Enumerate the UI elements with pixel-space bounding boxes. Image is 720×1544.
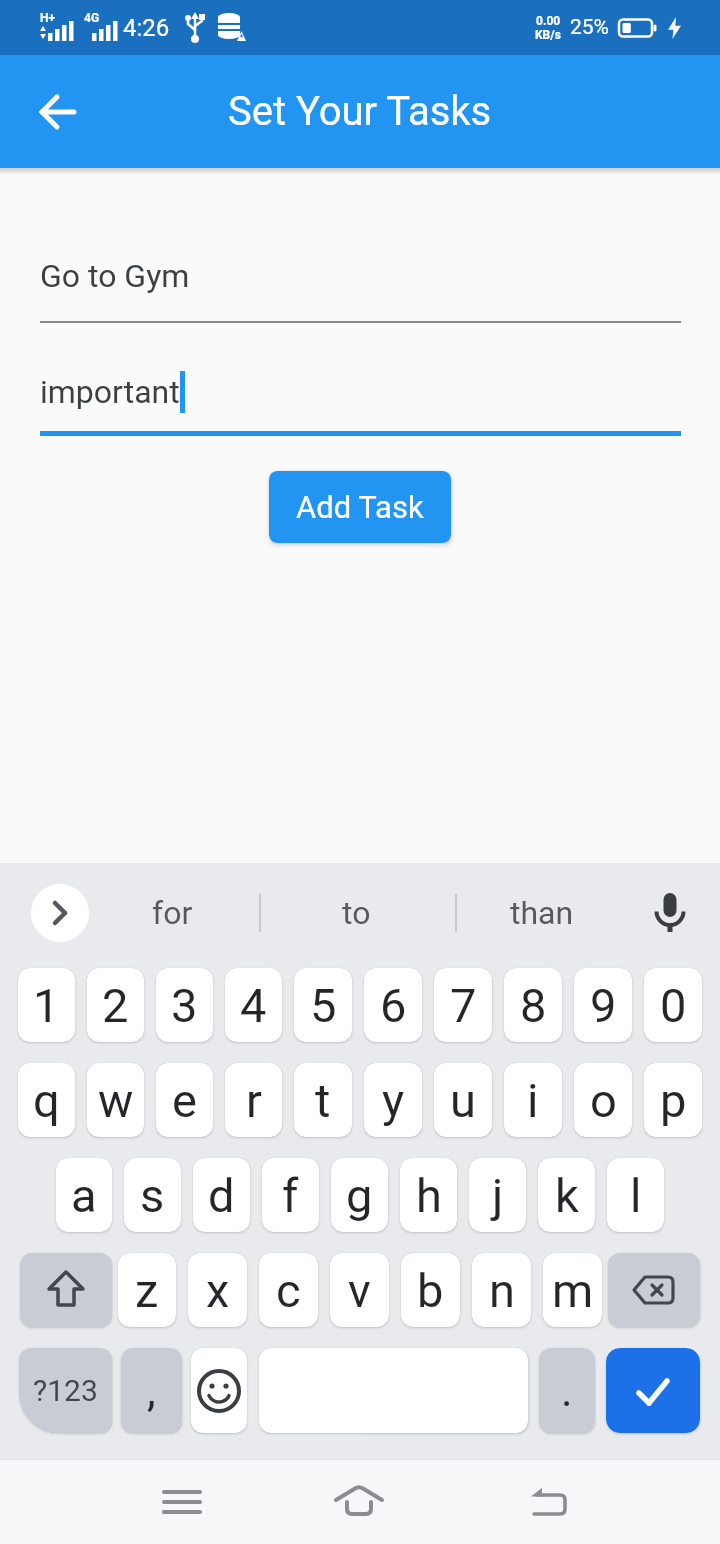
staticText: l (630, 1168, 642, 1223)
staticText: 25% (570, 15, 609, 40)
staticText: Go to Gym (40, 257, 190, 295)
button[interactable] (606, 1348, 700, 1433)
staticText: p (660, 1073, 687, 1128)
staticText: m (552, 1263, 594, 1318)
button[interactable]: q (18, 1063, 75, 1137)
button[interactable]: t (294, 1063, 352, 1137)
staticText: . (561, 1365, 573, 1417)
staticText: 3 (171, 978, 198, 1033)
button[interactable]: 7 (434, 968, 492, 1042)
button[interactable] (20, 1253, 112, 1327)
staticText: g (346, 1168, 373, 1223)
button[interactable]: h (400, 1158, 457, 1232)
staticText: c (276, 1263, 301, 1318)
button[interactable]: 6 (364, 968, 422, 1042)
staticText: 9 (590, 978, 617, 1033)
button[interactable]: i (504, 1063, 562, 1137)
button[interactable]: to (276, 863, 436, 963)
button[interactable]: l (607, 1158, 664, 1232)
button[interactable]: n (472, 1253, 531, 1327)
staticText: H+ (40, 11, 56, 25)
staticText: , (147, 1365, 156, 1417)
button[interactable] (309, 1459, 409, 1544)
button[interactable]: m (543, 1253, 602, 1327)
button[interactable]: b (401, 1253, 460, 1327)
button[interactable]: 8 (504, 968, 562, 1042)
button[interactable]: k (538, 1158, 595, 1232)
staticText: 0.00 (536, 14, 561, 28)
button[interactable]: 5 (294, 968, 352, 1042)
button[interactable]: 3 (156, 968, 213, 1042)
staticText: x (206, 1263, 230, 1318)
button[interactable]: 0 (644, 968, 702, 1042)
button[interactable] (132, 1459, 232, 1544)
staticText: for (152, 894, 193, 932)
staticText: 0 (660, 978, 687, 1033)
button[interactable]: . (539, 1348, 595, 1433)
button[interactable]: a (56, 1158, 112, 1232)
button[interactable]: Add Task (269, 471, 451, 543)
button[interactable]: z (118, 1253, 176, 1327)
staticText: Add Task (296, 489, 424, 525)
button[interactable] (31, 884, 89, 942)
staticText: h (416, 1168, 442, 1223)
staticText: z (135, 1263, 159, 1318)
staticText: a (71, 1168, 97, 1223)
staticText: 7 (450, 978, 477, 1033)
staticText: 8 (520, 978, 547, 1033)
staticText: 4:26 (123, 14, 170, 42)
button[interactable]: r (225, 1063, 282, 1137)
button[interactable]: d (193, 1158, 250, 1232)
button[interactable]: v (330, 1253, 389, 1327)
staticText: y (382, 1073, 405, 1128)
button[interactable]: , (121, 1348, 182, 1433)
button[interactable]: o (574, 1063, 632, 1137)
staticText: o (590, 1073, 617, 1128)
staticText: 4 (240, 978, 267, 1033)
button[interactable]: than (462, 863, 622, 963)
button[interactable]: f (262, 1158, 319, 1232)
staticText: u (450, 1073, 476, 1128)
button[interactable]: 1 (18, 968, 75, 1042)
staticText: important (40, 373, 180, 411)
staticText: 1 (33, 978, 60, 1033)
button[interactable]: ?123 (19, 1348, 112, 1433)
staticText: Set Your Tasks (228, 88, 492, 135)
staticText: than (510, 894, 574, 932)
button[interactable]: w (87, 1063, 144, 1137)
staticText: 2 (102, 978, 129, 1033)
staticText: 4G (84, 11, 100, 25)
staticText: r (246, 1073, 262, 1128)
button[interactable] (191, 1348, 247, 1433)
button[interactable] (608, 1253, 700, 1327)
staticText: f (282, 1168, 299, 1223)
button[interactable] (638, 881, 702, 945)
button[interactable] (38, 92, 78, 132)
staticText: 6 (380, 978, 407, 1033)
staticText: t (315, 1073, 331, 1128)
staticText: v (348, 1263, 371, 1318)
button[interactable]: p (644, 1063, 702, 1137)
staticText: s (140, 1168, 165, 1223)
staticText: j (492, 1168, 504, 1223)
button[interactable]: 9 (574, 968, 632, 1042)
button[interactable]: 4 (225, 968, 282, 1042)
button[interactable]: y (364, 1063, 422, 1137)
staticText: n (489, 1263, 515, 1318)
button[interactable]: e (156, 1063, 213, 1137)
staticText: k (555, 1168, 579, 1223)
button[interactable]: j (469, 1158, 526, 1232)
button[interactable]: g (331, 1158, 388, 1232)
staticText: e (172, 1073, 197, 1128)
button[interactable]: x (188, 1253, 247, 1327)
button[interactable]: s (124, 1158, 181, 1232)
staticText: 5 (310, 978, 337, 1033)
button[interactable]: c (259, 1253, 318, 1327)
button[interactable] (499, 1459, 599, 1544)
button[interactable]: for (92, 863, 252, 963)
button[interactable]: u (434, 1063, 492, 1137)
staticText: ?123 (33, 1373, 98, 1408)
staticText: w (98, 1073, 134, 1128)
button[interactable]: 2 (87, 968, 144, 1042)
